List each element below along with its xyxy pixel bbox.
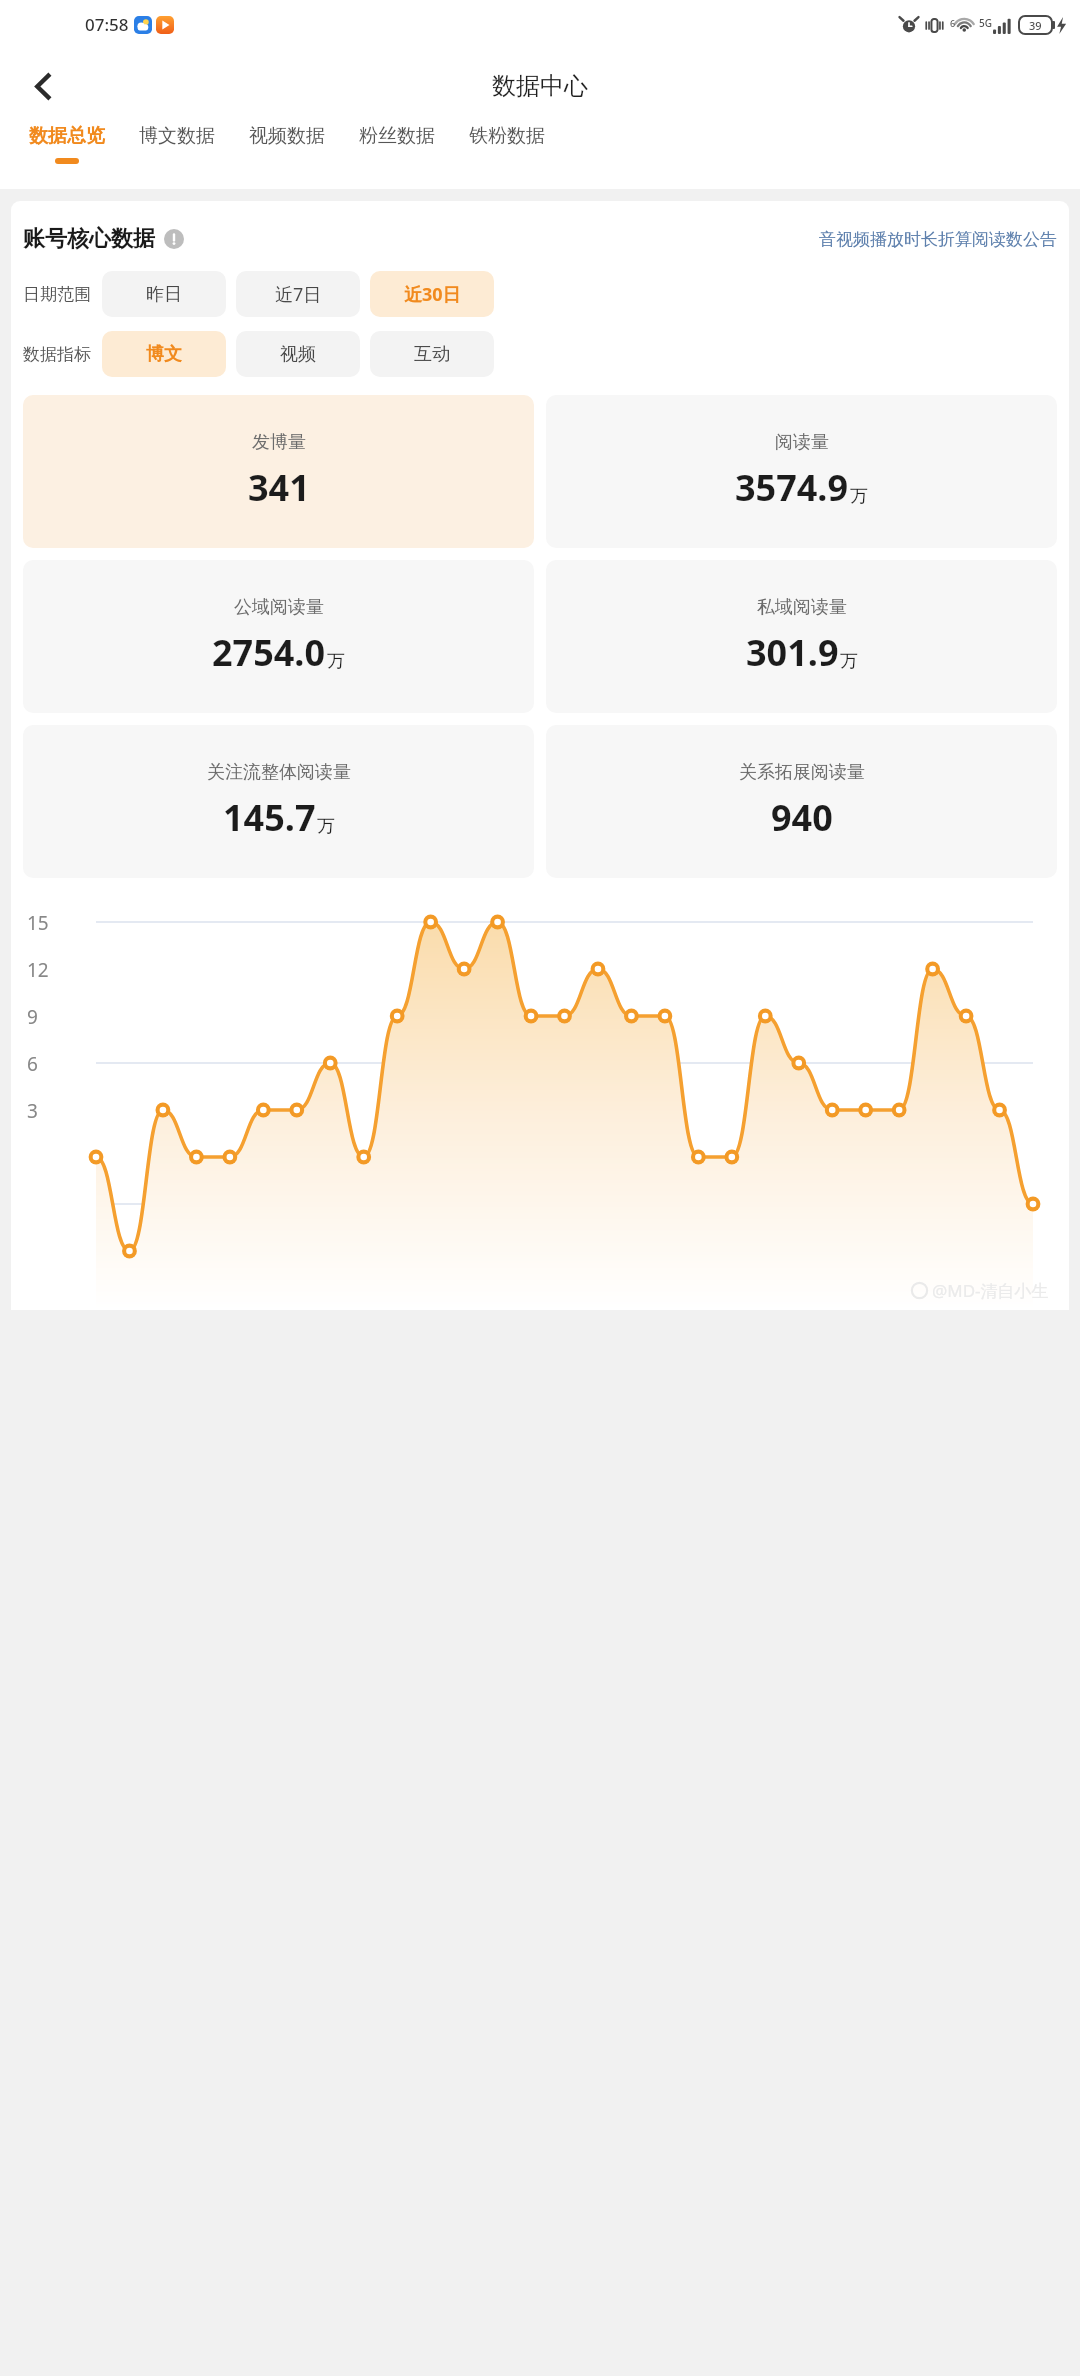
staticText: 数据中心	[492, 71, 588, 101]
staticText: 阅读量	[775, 431, 829, 454]
staticText: 铁粉数据	[469, 124, 545, 148]
staticText: 日期范围	[23, 284, 91, 305]
staticText: 昨日	[146, 283, 182, 306]
button[interactable]: 博文数据	[128, 124, 226, 158]
button[interactable]: 视频	[236, 331, 360, 377]
button[interactable]: 关注流整体阅读量	[23, 725, 534, 878]
button[interactable]: 视频数据	[238, 124, 336, 158]
button[interactable]: 发博量	[23, 395, 534, 548]
button[interactable]: 关系拓展阅读量	[546, 725, 1057, 878]
button[interactable]: 博文	[102, 331, 226, 377]
staticText: 2754.0	[212, 628, 326, 677]
staticText: 关系拓展阅读量	[739, 761, 865, 784]
staticText: 940	[771, 793, 833, 842]
staticText: 6	[27, 1051, 38, 1077]
staticText: 万	[317, 815, 335, 838]
staticText: 公域阅读量	[234, 596, 324, 619]
staticText: 301.9	[746, 628, 839, 677]
staticText: 07:58	[85, 13, 129, 36]
staticText: 发博量	[252, 431, 306, 454]
staticText: 近7日	[275, 282, 322, 307]
staticText: 6	[950, 17, 956, 29]
button[interactable]: 近7日	[236, 271, 360, 317]
button[interactable]: 阅读量	[546, 395, 1057, 548]
staticText: 互动	[414, 343, 450, 366]
staticText: @MD-清自小生	[932, 1279, 1049, 1302]
staticText: 12	[27, 957, 49, 983]
staticText: 近30日	[404, 282, 461, 307]
staticText: 博文	[146, 343, 182, 366]
button[interactable]: 粉丝数据	[348, 124, 446, 158]
staticText: 数据指标	[23, 344, 91, 365]
staticText: 9	[27, 1004, 38, 1030]
staticText: 145.7	[223, 793, 316, 842]
staticText: 3	[27, 1098, 38, 1124]
button[interactable]: Back	[16, 59, 70, 113]
button[interactable]: 互动	[370, 331, 494, 377]
staticText: 5G	[979, 16, 992, 30]
staticText: 关注流整体阅读量	[207, 761, 351, 784]
staticText: 私域阅读量	[757, 596, 847, 619]
staticText: 音视频播放时长折算阅读数公告	[819, 229, 1057, 250]
staticText: 341	[248, 463, 310, 512]
staticText: 粉丝数据	[359, 124, 435, 148]
button[interactable]: 音视频播放时长折算阅读数公告	[819, 229, 1057, 250]
staticText: 3574.9	[735, 463, 849, 512]
button[interactable]: Info	[164, 229, 184, 249]
staticText: 万	[850, 485, 868, 508]
staticText: 视频	[280, 343, 316, 366]
button[interactable]: 近30日	[370, 271, 494, 317]
staticText: 39	[1029, 18, 1042, 33]
staticText: 账号核心数据	[23, 225, 155, 253]
button[interactable]: 数据总览	[18, 124, 116, 164]
button[interactable]: 公域阅读量	[23, 560, 534, 713]
button[interactable]: 铁粉数据	[458, 124, 556, 158]
staticText: 万	[840, 650, 858, 673]
staticText: 视频数据	[249, 124, 325, 148]
staticText: 数据总览	[29, 124, 105, 148]
button[interactable]: 私域阅读量	[546, 560, 1057, 713]
staticText: 15	[27, 910, 49, 936]
button[interactable]: 昨日	[102, 271, 226, 317]
staticText: 博文数据	[139, 124, 215, 148]
staticText: 万	[327, 650, 345, 673]
